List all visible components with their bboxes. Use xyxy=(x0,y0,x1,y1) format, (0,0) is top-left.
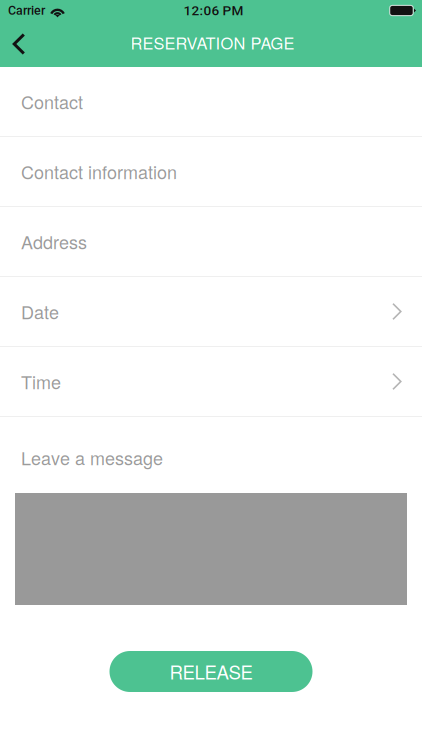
button[interactable]: Date xyxy=(0,277,422,347)
button[interactable]: Contact information xyxy=(0,137,422,207)
button[interactable]: Back xyxy=(0,22,43,66)
staticText: RESERVATION PAGE xyxy=(130,31,294,54)
staticText: Carrier xyxy=(8,3,45,18)
staticText: Contact xyxy=(21,89,83,114)
staticText: Date xyxy=(21,299,59,324)
staticText: Address xyxy=(21,229,87,254)
button[interactable]: Time xyxy=(0,347,422,417)
staticText: Leave a message xyxy=(21,445,163,470)
button[interactable]: Contact xyxy=(0,67,422,137)
staticText: Contact information xyxy=(21,159,177,184)
button[interactable]: Address xyxy=(0,207,422,277)
staticText: Time xyxy=(21,369,61,394)
button[interactable]: RELEASE xyxy=(109,651,312,692)
staticText: 12:06 PM xyxy=(183,2,243,18)
staticText: RELEASE xyxy=(169,658,252,685)
